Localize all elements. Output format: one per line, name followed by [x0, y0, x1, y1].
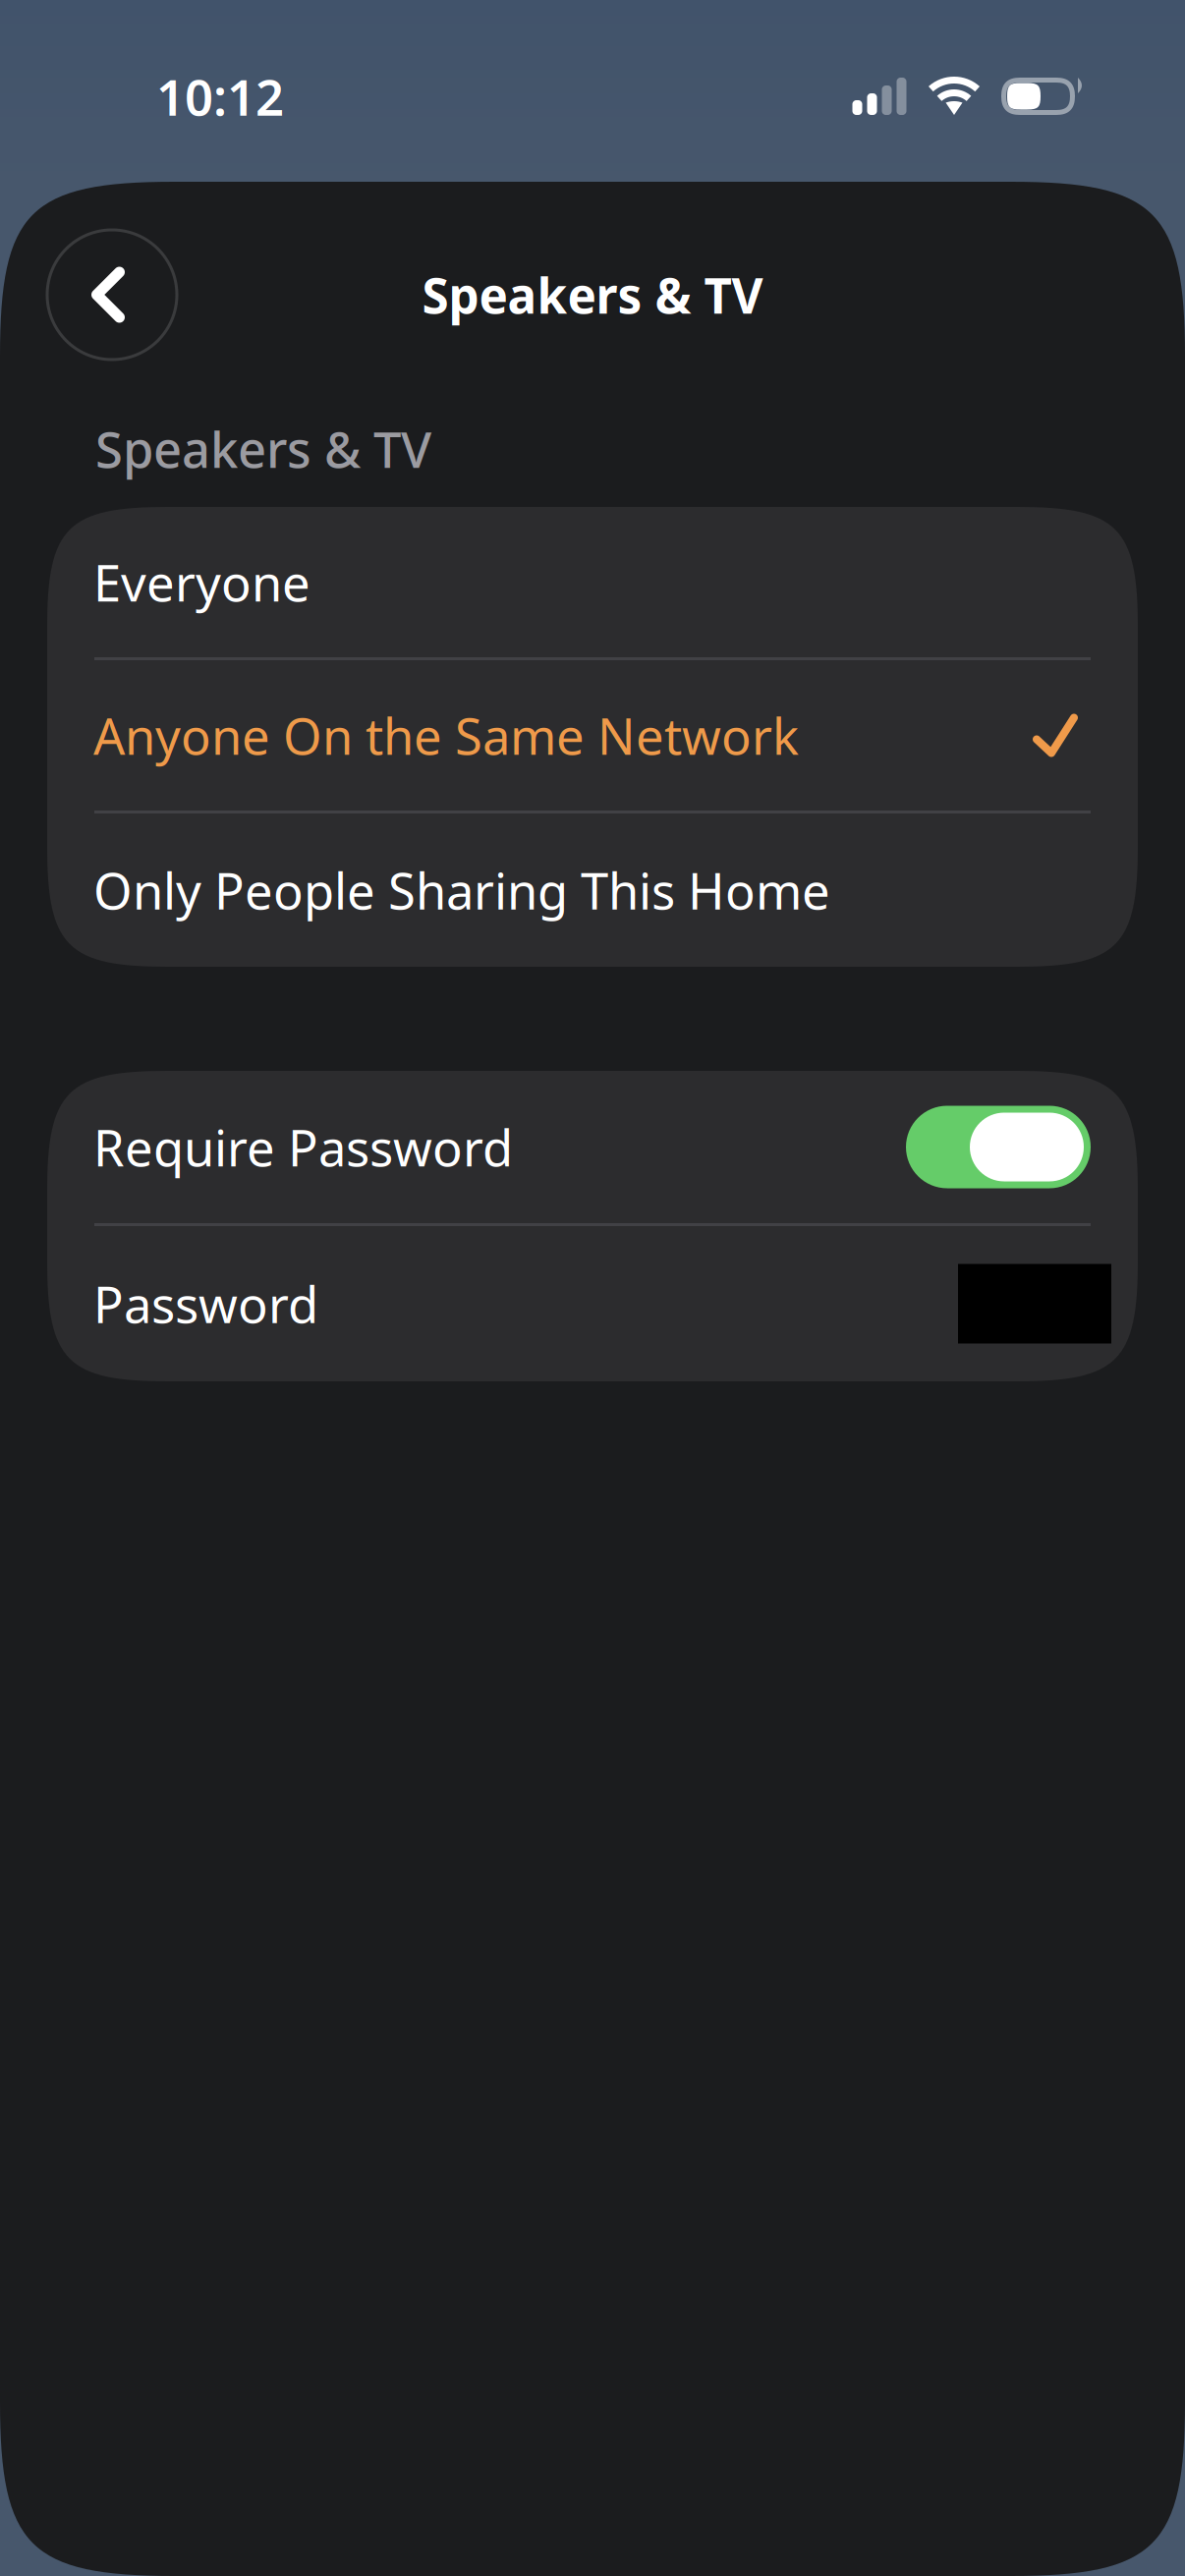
staticText: 10:12	[156, 63, 284, 129]
staticText: Password	[93, 1271, 318, 1337]
button[interactable]: Back	[47, 230, 177, 360]
button[interactable]: Only People Sharing This Home	[47, 813, 1138, 967]
button[interactable]: Anyone On the Same Network	[47, 660, 1138, 811]
button[interactable]: Require Password	[906, 1106, 1091, 1188]
button[interactable]: Require Password	[47, 1071, 1138, 1223]
staticText: Speakers & TV	[422, 263, 763, 327]
staticText: Require Password	[93, 1114, 513, 1180]
staticText: Speakers & TV	[95, 416, 431, 482]
button[interactable]: Password	[47, 1226, 1138, 1381]
staticText: Everyone	[93, 549, 310, 615]
staticText: Anyone On the Same Network	[93, 702, 799, 768]
staticText: Only People Sharing This Home	[93, 857, 830, 923]
button[interactable]: Everyone	[47, 507, 1138, 657]
